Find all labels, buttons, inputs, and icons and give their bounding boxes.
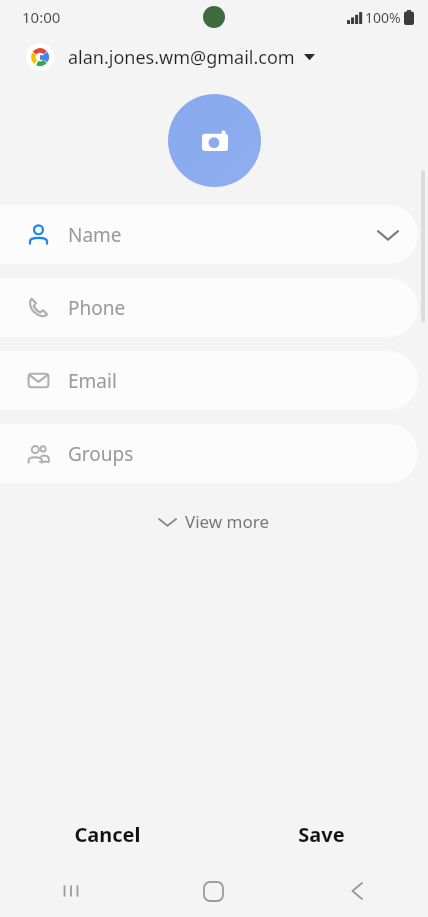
button[interactable]: Phone <box>0 278 418 337</box>
staticText: View more <box>185 510 270 533</box>
staticText: 100% <box>365 8 401 27</box>
button[interactable]: Recent apps <box>0 865 142 917</box>
button[interactable]: Cancel <box>0 803 214 865</box>
button[interactable]: alan.jones.wm@gmail.com <box>0 34 428 80</box>
staticText: Groups <box>68 441 134 467</box>
button[interactable]: Save <box>214 803 428 865</box>
button[interactable]: View more <box>145 504 284 539</box>
staticText: Email <box>68 368 117 394</box>
staticText: Cancel <box>74 821 141 848</box>
button[interactable]: Email <box>0 351 418 410</box>
button[interactable]: Groups <box>0 424 418 483</box>
button[interactable]: Back <box>285 865 428 917</box>
button[interactable]: Name <box>0 205 418 264</box>
staticText: Save <box>298 821 345 848</box>
button[interactable]: Home <box>142 865 285 917</box>
button[interactable]: Add photo <box>168 94 261 187</box>
staticText: alan.jones.wm@gmail.com <box>68 45 295 70</box>
staticText: Name <box>68 222 122 248</box>
staticText: 10:00 <box>22 7 61 27</box>
staticText: Phone <box>68 295 126 321</box>
